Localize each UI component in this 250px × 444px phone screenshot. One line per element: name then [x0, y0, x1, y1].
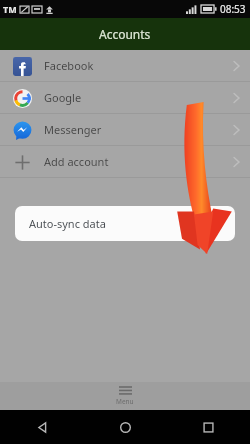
button[interactable]: Messenger: [0, 114, 250, 145]
button[interactable]: Menu: [0, 382, 250, 410]
staticText: TM: [3, 3, 17, 15]
staticText: Add account: [44, 154, 109, 169]
button[interactable]: Facebook: [0, 50, 250, 81]
other: Auto-sync enabled: [208, 216, 223, 231]
staticText: Google: [44, 90, 82, 105]
staticText: Accounts: [99, 26, 151, 42]
staticText: Messenger: [44, 122, 102, 137]
button[interactable]: Home: [84, 410, 167, 444]
button[interactable]: Add account: [0, 146, 250, 177]
staticText: Auto-sync data: [29, 216, 106, 231]
button[interactable]: Recent apps: [167, 410, 250, 444]
staticText: Menu: [116, 397, 134, 406]
button[interactable]: Google: [0, 82, 250, 113]
button[interactable]: Back: [0, 410, 84, 444]
staticText: 08:53: [220, 2, 246, 16]
button[interactable]: Auto-sync data: [15, 206, 235, 241]
staticText: Facebook: [44, 58, 94, 73]
